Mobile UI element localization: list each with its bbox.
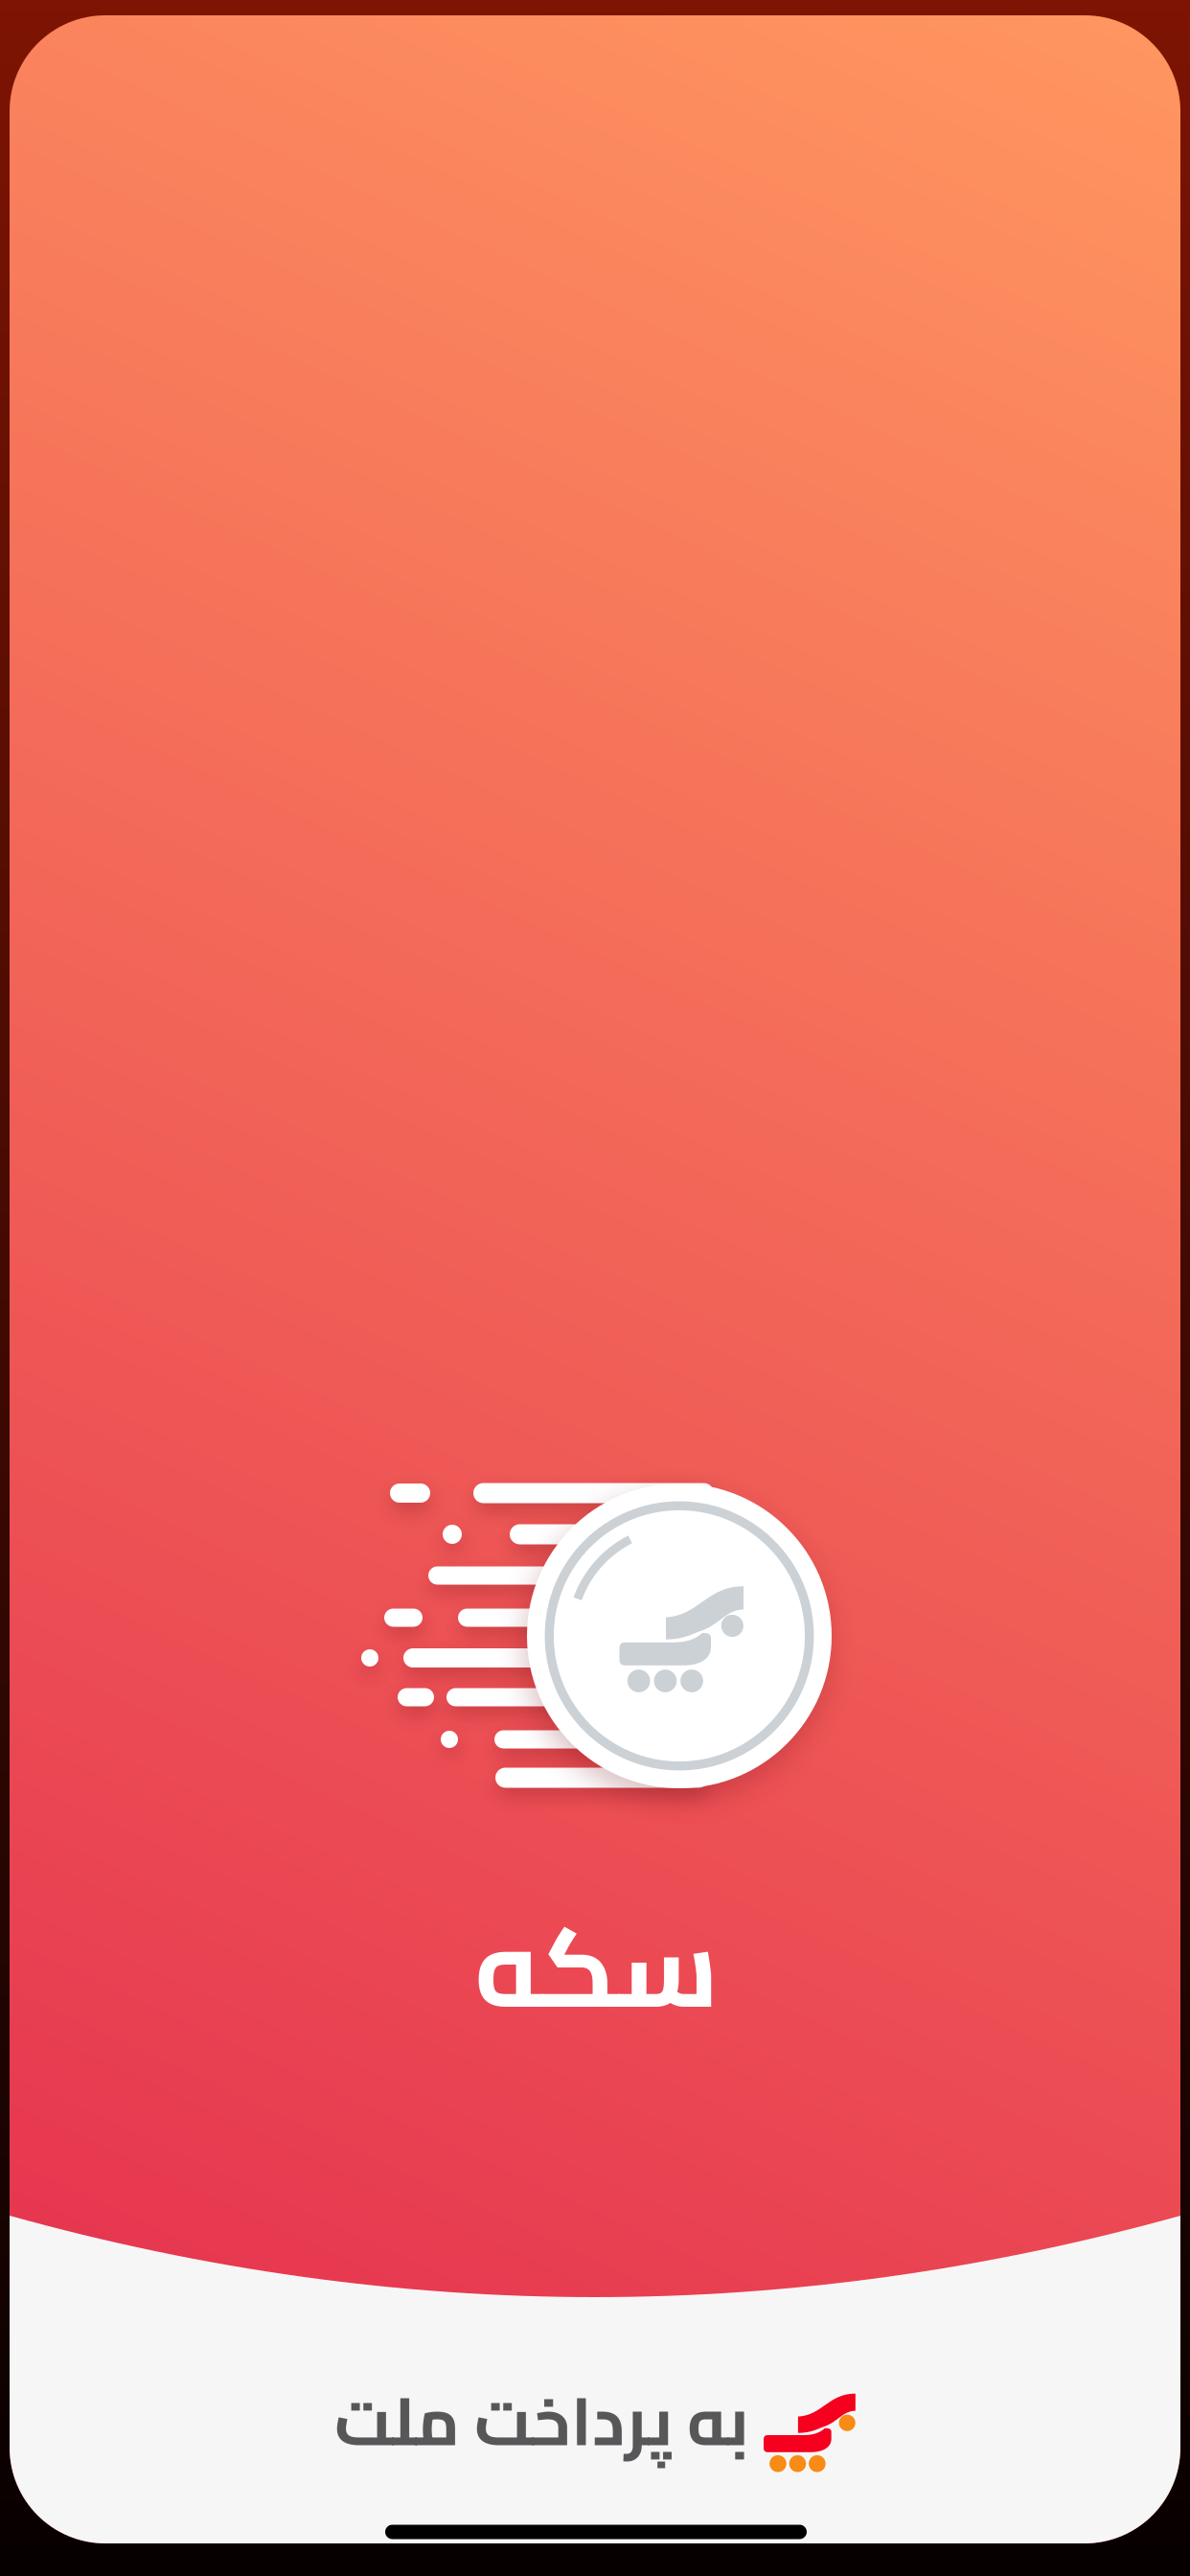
staticText: سکه [474,1864,718,2070]
staticText: به پرداخت ملت [334,2358,749,2483]
